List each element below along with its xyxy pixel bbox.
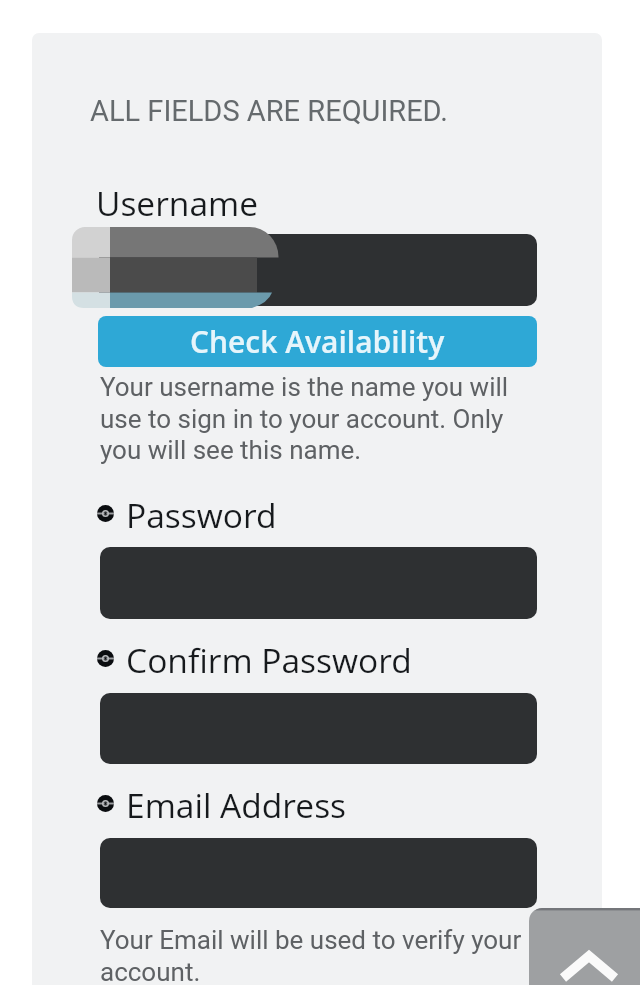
button[interactable]: Email address input bbox=[100, 838, 537, 908]
button[interactable]: Check Availability bbox=[98, 316, 537, 367]
staticText: Password bbox=[126, 492, 277, 538]
staticText: Email Address bbox=[126, 782, 347, 828]
staticText: Your Email will be used to verify your a… bbox=[100, 925, 525, 985]
button[interactable]: Confirm password input bbox=[100, 693, 537, 764]
button[interactable]: Password input bbox=[100, 547, 537, 619]
staticText: Check Availability bbox=[190, 321, 445, 362]
staticText: Username bbox=[96, 180, 258, 226]
staticText: Confirm Password bbox=[126, 637, 412, 683]
button[interactable]: Scroll to top bbox=[529, 908, 640, 985]
button[interactable]: Username input bbox=[99, 234, 537, 306]
staticText: Your username is the name you will use t… bbox=[100, 372, 520, 465]
staticText: ALL FIELDS ARE REQUIRED. bbox=[90, 94, 448, 128]
